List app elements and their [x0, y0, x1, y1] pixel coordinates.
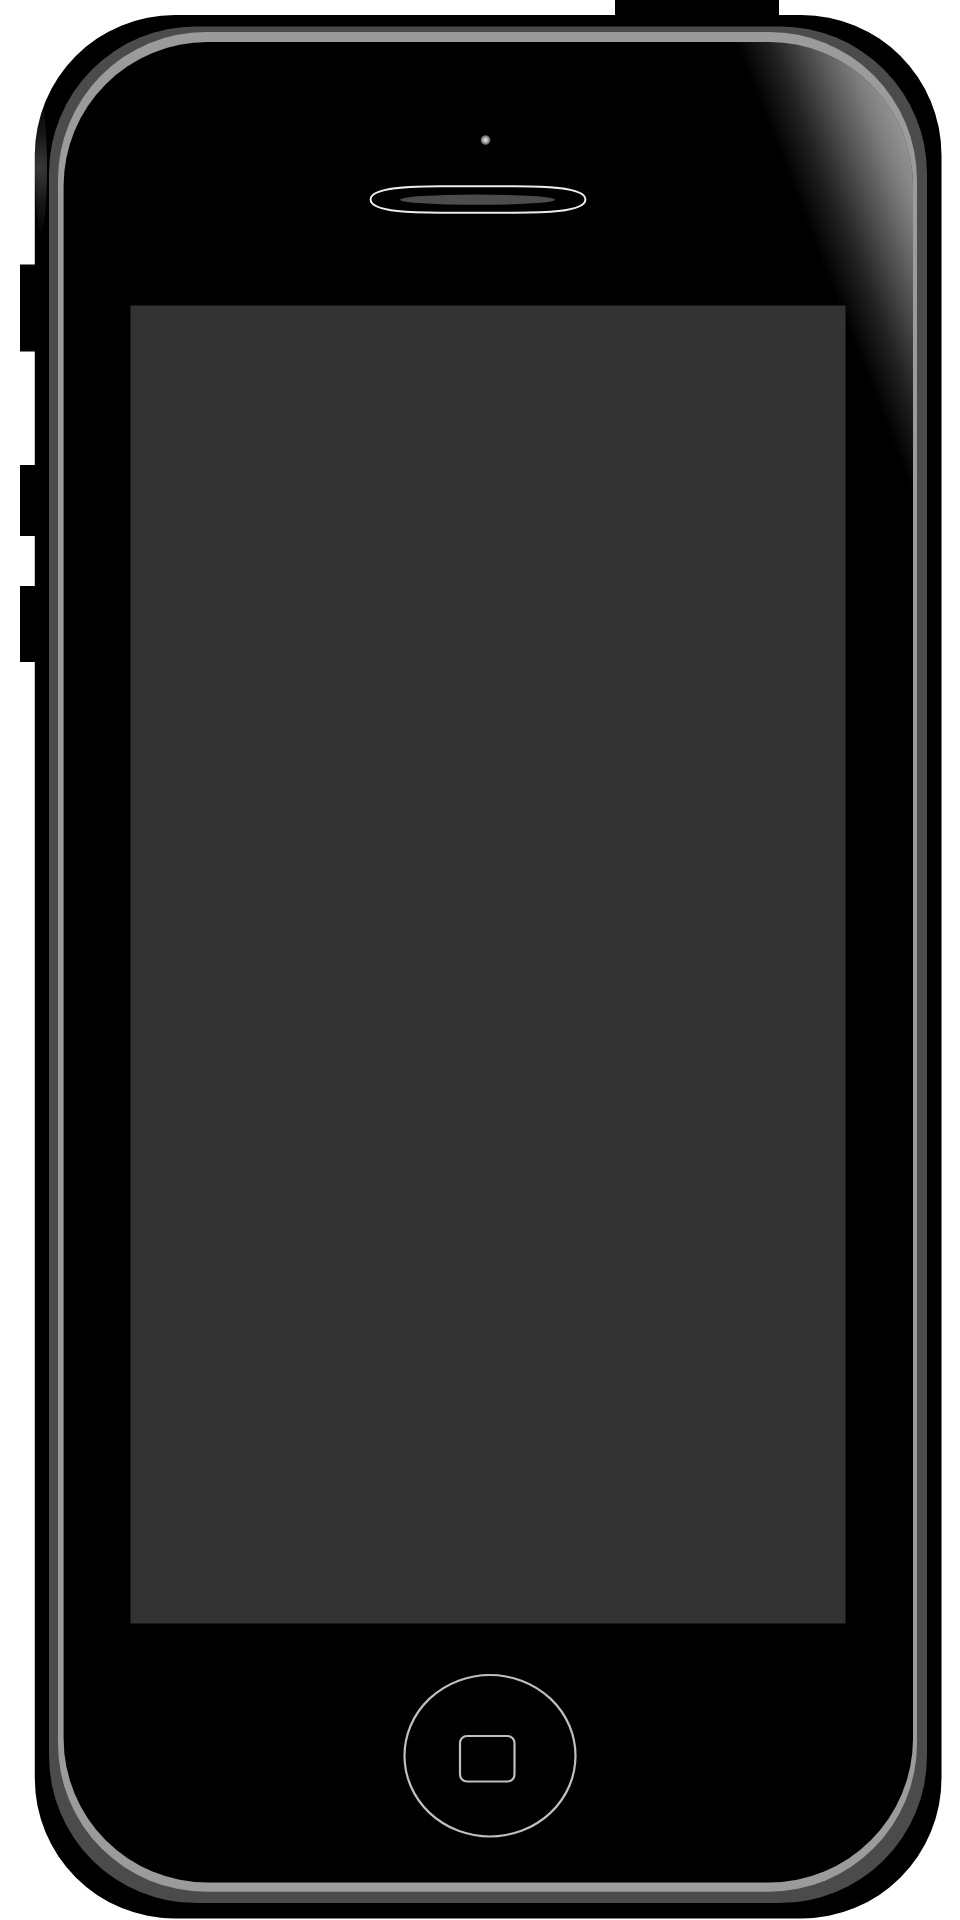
button[interactable]: Home button	[405, 1675, 576, 1837]
other: Smartphone	[0, 0, 960, 1920]
